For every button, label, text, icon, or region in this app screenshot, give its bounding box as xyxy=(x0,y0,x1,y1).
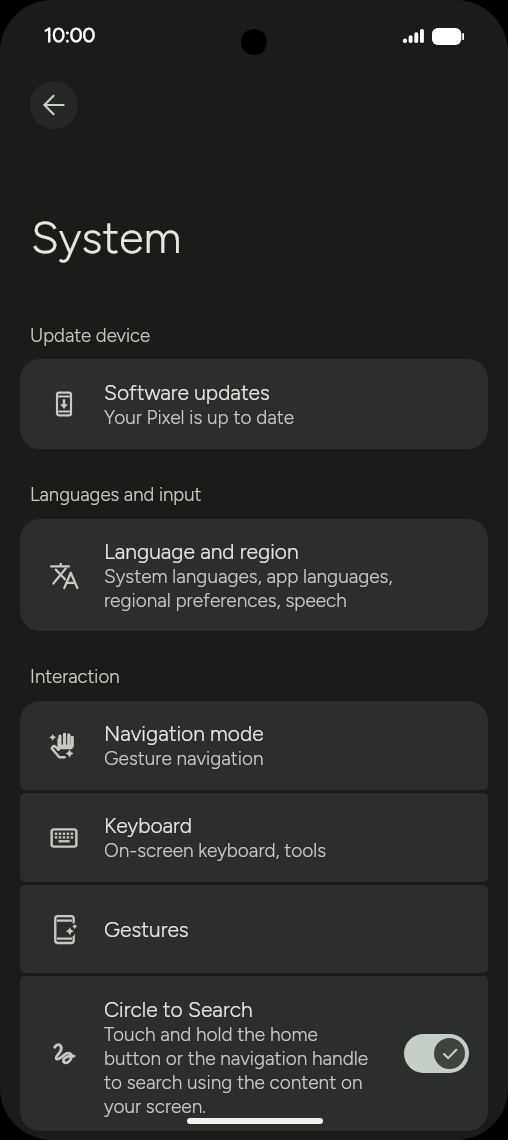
staticText: Navigation mode xyxy=(104,721,264,746)
staticText: Language and region xyxy=(104,539,299,564)
button[interactable]: Circle to Search xyxy=(20,976,488,1131)
button[interactable]: Navigation mode xyxy=(20,701,488,790)
staticText: Software updates xyxy=(104,380,270,405)
staticText: Update device xyxy=(30,324,151,346)
staticText: Gestures xyxy=(104,917,189,942)
staticText: Languages and input xyxy=(30,483,202,505)
staticText: Circle to Search xyxy=(104,997,253,1022)
button[interactable]: Gestures xyxy=(20,885,488,973)
staticText: Interaction xyxy=(30,665,120,687)
button[interactable]: Software updates xyxy=(20,359,488,449)
staticText: Your Pixel is up to date xyxy=(104,406,295,429)
button[interactable]: Circle to Search toggle xyxy=(404,1034,469,1073)
button[interactable]: Back xyxy=(30,81,78,129)
staticText: Touch and hold the home button or the na… xyxy=(104,1023,369,1118)
staticText: System languages, app languages, regiona… xyxy=(104,565,393,612)
staticText: Gesture navigation xyxy=(104,747,264,770)
staticText: On-screen keyboard, tools xyxy=(104,839,327,862)
button[interactable]: Keyboard xyxy=(20,793,488,882)
staticText: System xyxy=(31,210,182,264)
staticText: Keyboard xyxy=(104,813,193,838)
staticText: 10:00 xyxy=(44,23,96,47)
button[interactable]: Language and region xyxy=(20,519,488,631)
